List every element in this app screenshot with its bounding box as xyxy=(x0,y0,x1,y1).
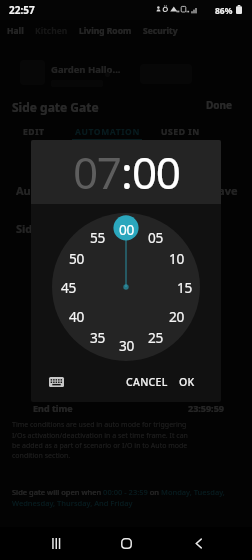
staticText: 15 xyxy=(177,278,192,297)
staticText: CANCEL xyxy=(126,375,168,389)
staticText: AUTOMATION xyxy=(75,126,140,138)
staticText: Side gate Gate xyxy=(12,99,99,115)
staticText: 50 xyxy=(69,249,84,268)
staticText: Done xyxy=(206,98,233,112)
button[interactable]: 00 xyxy=(132,142,180,202)
button[interactable]: USED IN xyxy=(154,124,206,140)
staticText: 00 xyxy=(132,142,180,202)
staticText: Kitchen xyxy=(35,25,68,37)
staticText: 55 xyxy=(90,228,105,247)
button[interactable]: EDIT xyxy=(10,124,58,140)
staticText: Side gate will open when 00:00 - 23:59 o… xyxy=(12,487,236,508)
button[interactable]: Switch to keyboard input xyxy=(45,371,67,393)
button[interactable]: 07 xyxy=(73,142,121,202)
button[interactable]: Home xyxy=(109,527,143,560)
staticText: Auto mode xyxy=(16,183,77,198)
staticText: 30 xyxy=(119,336,134,355)
button[interactable]: CANCEL xyxy=(121,370,173,394)
staticText: Side gate schedule xyxy=(16,221,119,236)
staticText: 25 xyxy=(148,328,163,347)
button[interactable]: Back xyxy=(181,527,215,560)
staticText: 20 xyxy=(169,307,184,326)
button[interactable]: OK xyxy=(174,370,200,394)
staticText: End time xyxy=(33,402,73,414)
staticText: Living Room xyxy=(79,25,132,37)
staticText: 10 xyxy=(169,249,184,268)
staticText: Time conditions are used in auto mode fo… xyxy=(12,420,192,460)
button[interactable]: AUTOMATION xyxy=(72,124,142,140)
staticText: 05 xyxy=(148,228,163,247)
staticText: 86% xyxy=(215,5,233,17)
staticText: Garden Hallo... xyxy=(51,63,121,76)
staticText: 35 xyxy=(90,328,105,347)
button[interactable]: Recent apps xyxy=(38,527,72,560)
staticText: 22:57 xyxy=(9,3,35,17)
staticText: 07 xyxy=(73,142,121,202)
staticText: EDIT xyxy=(23,126,45,138)
staticText: 00 xyxy=(119,220,134,239)
staticText: : xyxy=(121,142,132,202)
staticText: 23:59:59 xyxy=(188,402,224,414)
staticText: OK xyxy=(179,375,195,389)
staticText: 40 xyxy=(69,307,84,326)
staticText: 45 xyxy=(61,278,76,297)
button[interactable]: Done xyxy=(200,95,238,115)
staticText: Save xyxy=(212,183,238,198)
staticText: Security xyxy=(143,25,178,37)
staticText: USED IN xyxy=(161,126,200,138)
staticText: Hall xyxy=(7,25,24,37)
